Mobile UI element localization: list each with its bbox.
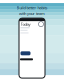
staticText: Today bbox=[20, 21, 30, 27]
staticText: with your team bbox=[19, 11, 45, 16]
staticText: Build better habits bbox=[16, 5, 47, 10]
